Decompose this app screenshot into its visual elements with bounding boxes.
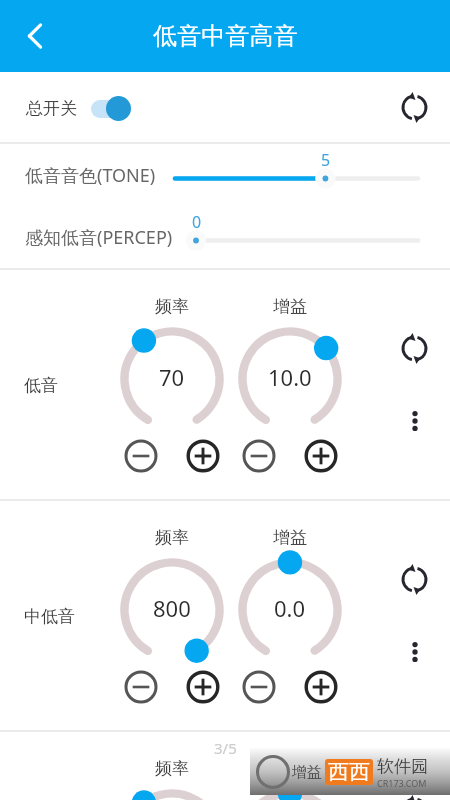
button[interactable]: 增益 bbox=[225, 545, 355, 675]
staticText: 低音 bbox=[24, 375, 58, 396]
button[interactable]: More options bbox=[394, 631, 435, 672]
button[interactable]: Decrease 频率 bbox=[120, 435, 162, 477]
staticText: 增益 bbox=[292, 763, 322, 782]
button[interactable]: Reset band bbox=[392, 788, 437, 800]
button[interactable]: More options bbox=[394, 400, 435, 441]
button[interactable]: Reset band bbox=[392, 326, 437, 371]
staticText: 10.0 bbox=[268, 362, 312, 392]
button[interactable]: 频率 bbox=[107, 314, 237, 444]
staticText: 低音音色(TONE) bbox=[25, 163, 156, 188]
button[interactable]: Increase 频率 bbox=[182, 435, 224, 477]
staticText: 频率 bbox=[155, 527, 189, 548]
staticText: 中低音 bbox=[24, 606, 75, 627]
button[interactable]: Increase 增益 bbox=[300, 435, 342, 477]
staticText: 频率 bbox=[155, 296, 189, 317]
staticText: 0 bbox=[192, 211, 202, 233]
staticText: 软件园 bbox=[377, 756, 428, 777]
button[interactable]: 5 bbox=[174, 150, 419, 200]
button[interactable]: 频率 bbox=[107, 545, 237, 675]
staticText: 低音中音高音 bbox=[153, 21, 298, 51]
staticText: 5 bbox=[321, 149, 331, 171]
button[interactable]: Decrease 增益 bbox=[238, 435, 280, 477]
staticText: 西西 bbox=[328, 759, 370, 785]
staticText: 增益 bbox=[273, 758, 307, 779]
staticText: 感知低音(PERCEP) bbox=[25, 225, 173, 250]
staticText: 频率 bbox=[155, 758, 189, 779]
staticText: CR173.COM bbox=[377, 777, 427, 789]
staticText: 3/5 bbox=[214, 738, 237, 758]
button[interactable]: 增益 bbox=[225, 776, 355, 800]
button[interactable]: Increase 增益 bbox=[300, 666, 342, 708]
button[interactable]: Decrease 频率 bbox=[120, 666, 162, 708]
button[interactable]: Reset band bbox=[392, 557, 437, 602]
staticText: 增益 bbox=[273, 296, 307, 317]
button[interactable]: Increase 频率 bbox=[182, 666, 224, 708]
staticText: 800 bbox=[153, 593, 191, 623]
staticText: 0.0 bbox=[274, 593, 306, 623]
button[interactable]: 0 bbox=[196, 212, 419, 262]
button[interactable]: Reset all bbox=[392, 85, 436, 129]
staticText: 增益 bbox=[273, 527, 307, 548]
staticText: 70 bbox=[159, 362, 185, 392]
button[interactable]: Decrease 增益 bbox=[238, 666, 280, 708]
button[interactable]: 总开关 bbox=[26, 96, 131, 121]
button[interactable]: 频率 bbox=[107, 776, 237, 800]
staticText: 总开关 bbox=[26, 98, 77, 119]
button[interactable]: Back bbox=[10, 11, 60, 61]
button[interactable]: 增益 bbox=[225, 314, 355, 444]
